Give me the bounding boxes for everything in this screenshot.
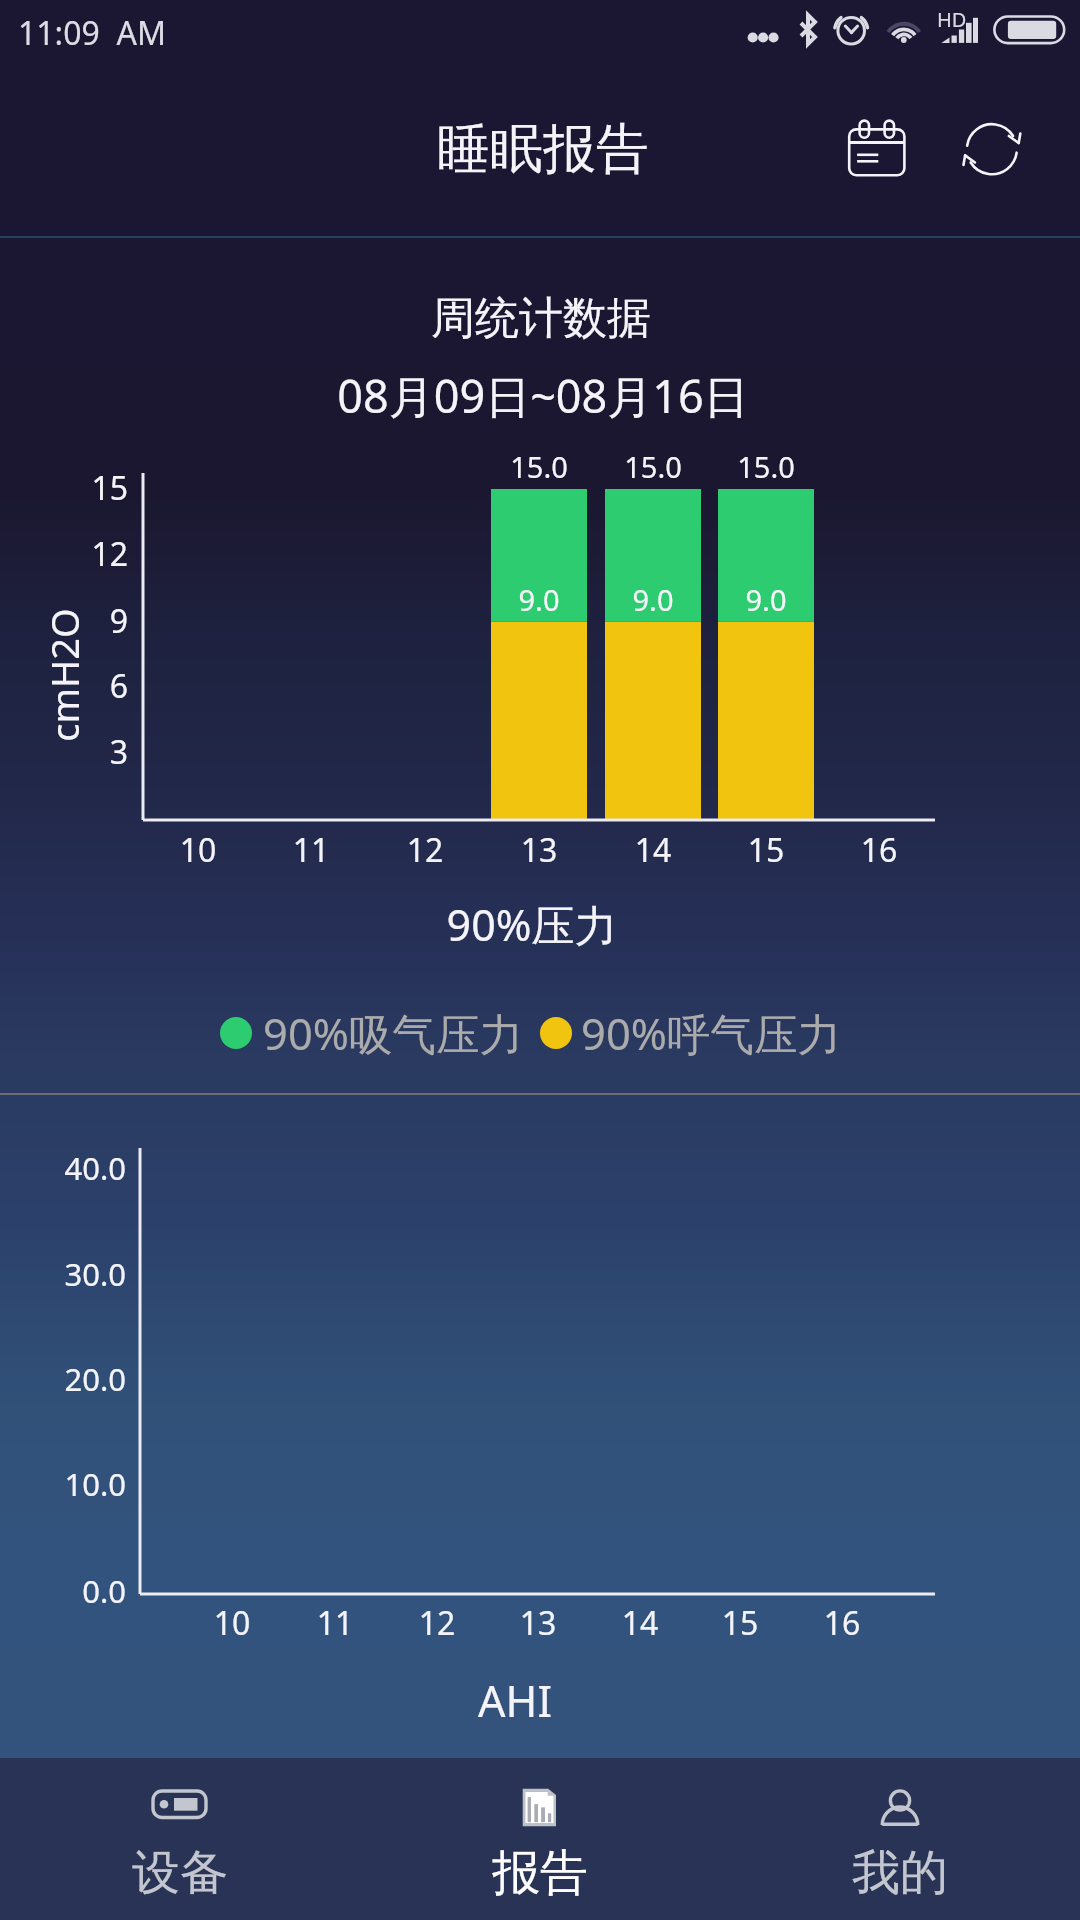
staticText: 14	[598, 828, 708, 872]
staticText: 9.0	[706, 580, 826, 619]
staticText: 11	[280, 1601, 390, 1645]
staticText: 9.0	[479, 580, 599, 619]
staticText: cmH2O	[38, 570, 90, 780]
staticText: 90%吸气压力	[263, 1003, 523, 1062]
staticText: 周统计数据	[340, 291, 742, 346]
staticText: 0.0	[0, 1570, 126, 1612]
staticText: 9.0	[593, 580, 713, 619]
staticText: 16	[787, 1601, 897, 1645]
staticText: 11	[256, 828, 366, 872]
button[interactable]: 设备	[0, 1758, 360, 1920]
staticText: 12	[370, 828, 480, 872]
staticText: 11:09 AM	[18, 11, 166, 55]
button[interactable]: Calendar	[829, 105, 925, 201]
staticText: 15	[64, 466, 128, 510]
staticText: 设备	[132, 1843, 228, 1903]
staticText: 13	[484, 828, 594, 872]
staticText: 15	[685, 1601, 795, 1645]
button[interactable]: 报告	[360, 1758, 720, 1920]
staticText: 10.0	[0, 1463, 126, 1505]
staticText: 9	[64, 599, 128, 643]
staticText: 90%压力	[332, 895, 732, 954]
staticText: HD	[937, 6, 967, 33]
staticText: 15.0	[479, 447, 599, 486]
staticText: 14	[585, 1601, 695, 1645]
staticText: 睡眠报告	[437, 116, 649, 183]
staticText: 3	[64, 730, 128, 774]
staticText: 16	[824, 828, 934, 872]
staticText: 10	[143, 828, 253, 872]
staticText: 90%呼气压力	[581, 1003, 841, 1062]
button[interactable]: 我的	[720, 1758, 1080, 1920]
staticText: 12	[64, 532, 128, 576]
staticText: 我的	[852, 1843, 948, 1903]
staticText: 15.0	[706, 447, 826, 486]
button[interactable]: Refresh	[942, 100, 1042, 200]
staticText: 08月09日~08月16日	[243, 365, 843, 426]
staticText: 12	[382, 1601, 492, 1645]
staticText: 20.0	[0, 1358, 126, 1400]
staticText: 30.0	[0, 1253, 126, 1295]
staticText: 6	[64, 664, 128, 708]
staticText: 40.0	[0, 1147, 126, 1189]
staticText: 报告	[492, 1843, 588, 1903]
staticText: 15	[711, 828, 821, 872]
staticText: AHI	[415, 1671, 615, 1730]
staticText: 10	[177, 1601, 287, 1645]
staticText: 13	[483, 1601, 593, 1645]
staticText: 15.0	[593, 447, 713, 486]
